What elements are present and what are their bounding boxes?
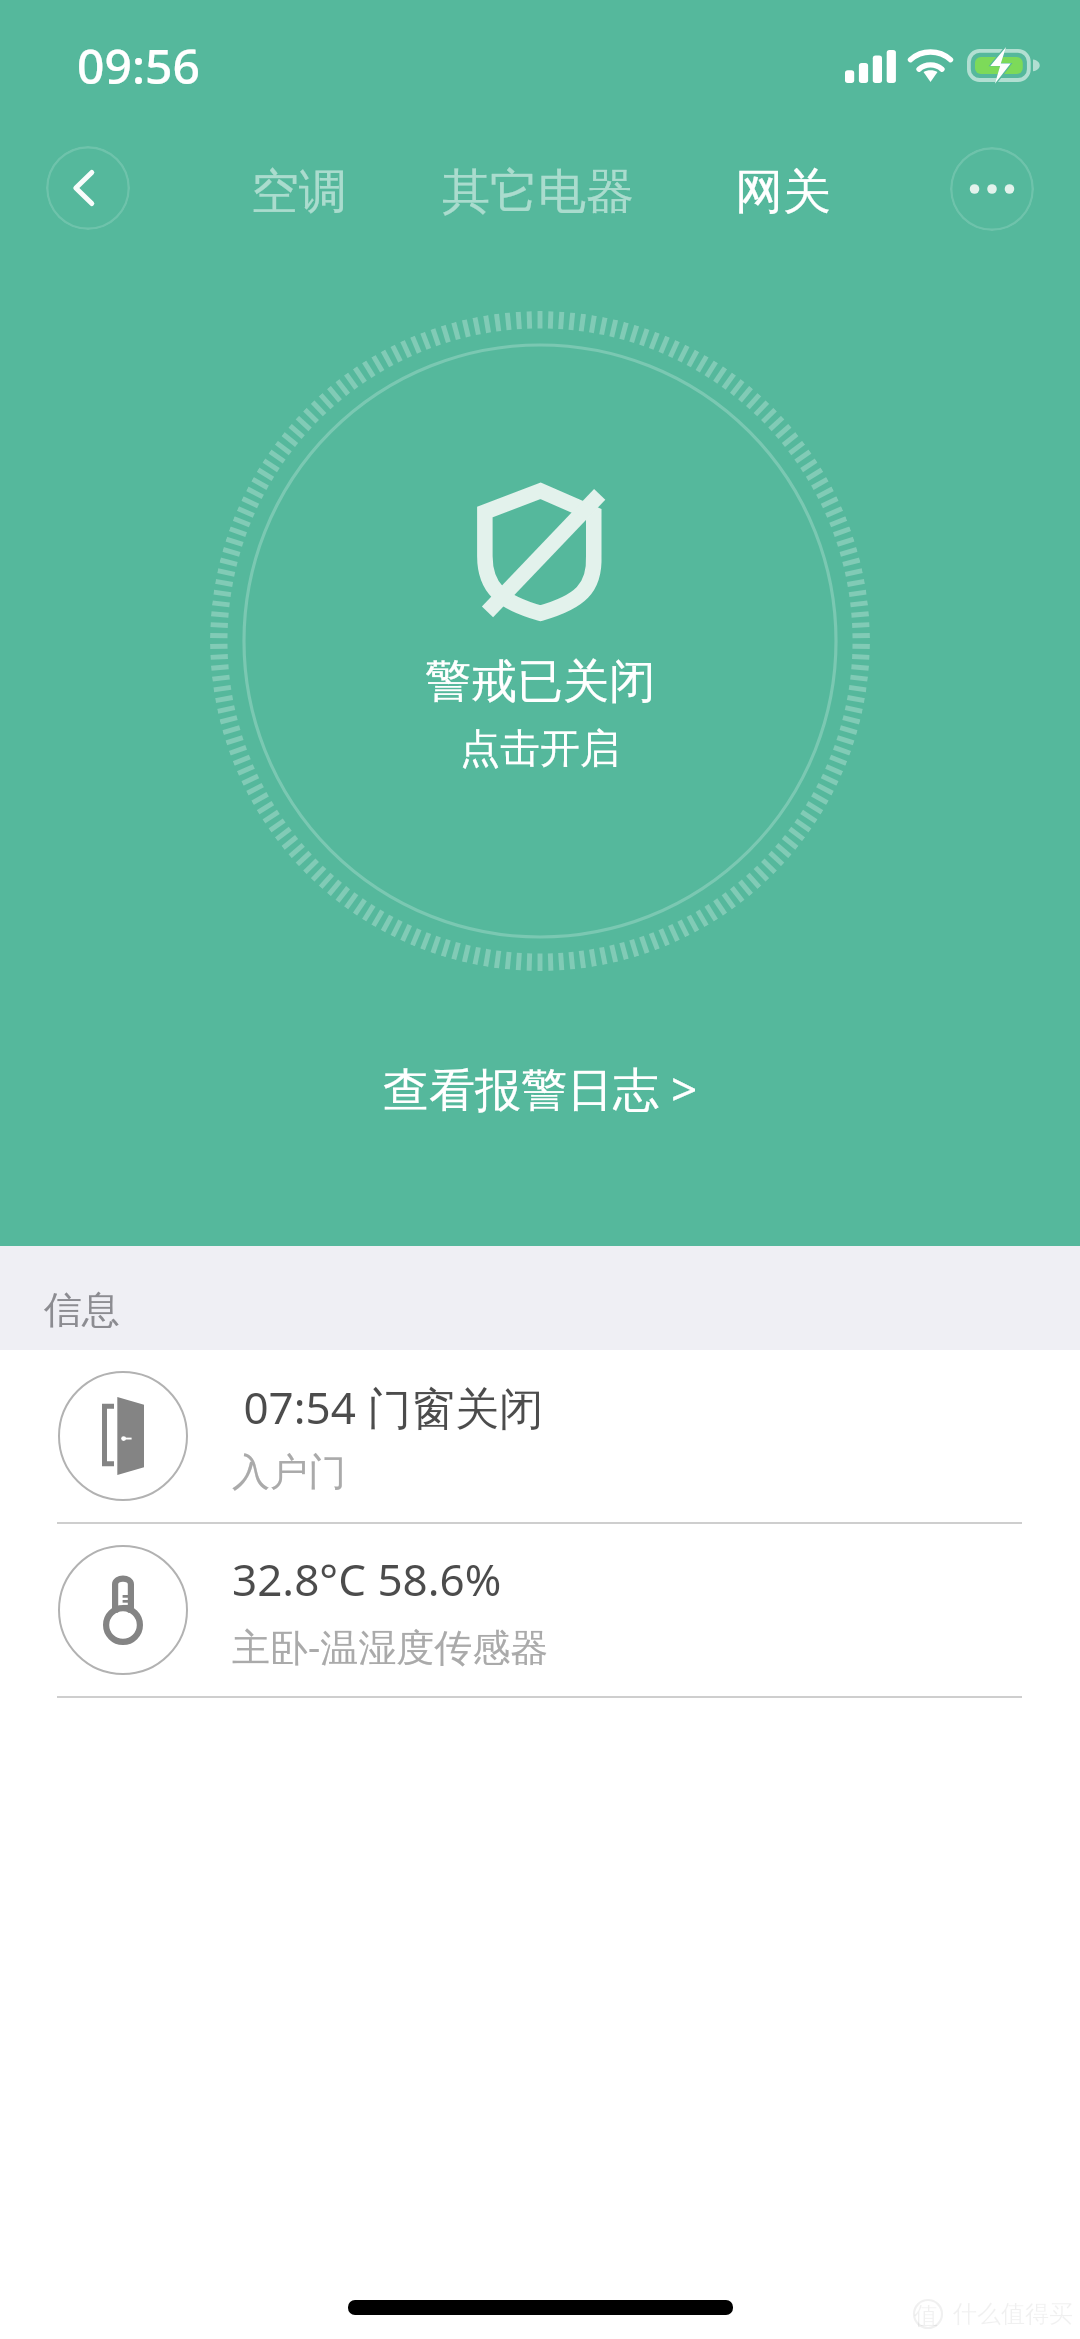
staticText: 32.8°C 58.6% bbox=[232, 1549, 502, 1609]
staticText: 警戒已关闭 bbox=[425, 653, 655, 711]
button[interactable]: 网关 bbox=[721, 150, 845, 234]
staticText: 网关 bbox=[735, 162, 831, 222]
staticText: 主卧-温湿度传感器 bbox=[232, 1620, 549, 1672]
staticText: 信息 bbox=[44, 1286, 120, 1334]
button[interactable]: 07:54 门窗关闭 bbox=[0, 1350, 1080, 1522]
button[interactable]: 查看报警日志 > bbox=[375, 1049, 706, 1128]
staticText: 09:56 bbox=[77, 33, 200, 98]
staticText: 07:54 门窗关闭 bbox=[232, 1377, 544, 1437]
button[interactable]: 空调 bbox=[237, 150, 361, 234]
staticText: 空调 bbox=[251, 162, 347, 222]
button[interactable]: 其它电器 bbox=[428, 150, 648, 234]
staticText: 点击开启 bbox=[460, 723, 620, 773]
staticText: 值 bbox=[914, 2301, 938, 2331]
button[interactable]: 警戒已关闭 bbox=[210, 311, 870, 971]
staticText: 查看报警日志 > bbox=[383, 1057, 698, 1120]
button[interactable]: 32.8°C 58.6% bbox=[0, 1524, 1080, 1696]
button[interactable]: Back bbox=[46, 146, 130, 230]
button[interactable]: More options bbox=[950, 147, 1034, 231]
staticText: 入户门 bbox=[232, 1448, 346, 1496]
staticText: 什么值得买 bbox=[953, 2299, 1073, 2329]
staticText: 其它电器 bbox=[442, 162, 634, 222]
